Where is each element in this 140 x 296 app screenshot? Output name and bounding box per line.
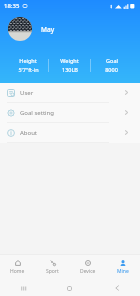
staticText: Weight <box>60 57 79 64</box>
staticText: About <box>20 129 38 137</box>
button[interactable]: Back <box>93 280 140 296</box>
staticText: Home <box>10 268 25 275</box>
staticText: Sport <box>46 268 59 275</box>
button[interactable]: Mine <box>105 254 140 280</box>
button[interactable]: About <box>0 123 140 142</box>
button[interactable]: Sport <box>35 254 70 280</box>
staticText: 130LB <box>62 66 78 73</box>
button[interactable]: Home <box>46 280 93 296</box>
staticText: Device <box>80 268 96 275</box>
staticText: 5'7"ft-in <box>18 66 39 73</box>
button[interactable]: Home <box>0 254 35 280</box>
staticText: User <box>20 89 34 97</box>
staticText: 8000 <box>105 66 118 73</box>
staticText: Goal <box>106 57 118 64</box>
button[interactable]: Goal setting <box>0 103 140 122</box>
button[interactable]: Profile photo <box>8 17 32 41</box>
staticText: Goal setting <box>20 109 55 117</box>
button[interactable]: User <box>0 83 140 102</box>
staticText: 18:35 <box>4 2 20 10</box>
staticText: Height <box>19 57 37 64</box>
staticText: May <box>41 25 55 34</box>
button[interactable]: Recent apps <box>0 280 46 296</box>
staticText: Mine <box>117 268 129 275</box>
button[interactable]: Device <box>70 254 105 280</box>
